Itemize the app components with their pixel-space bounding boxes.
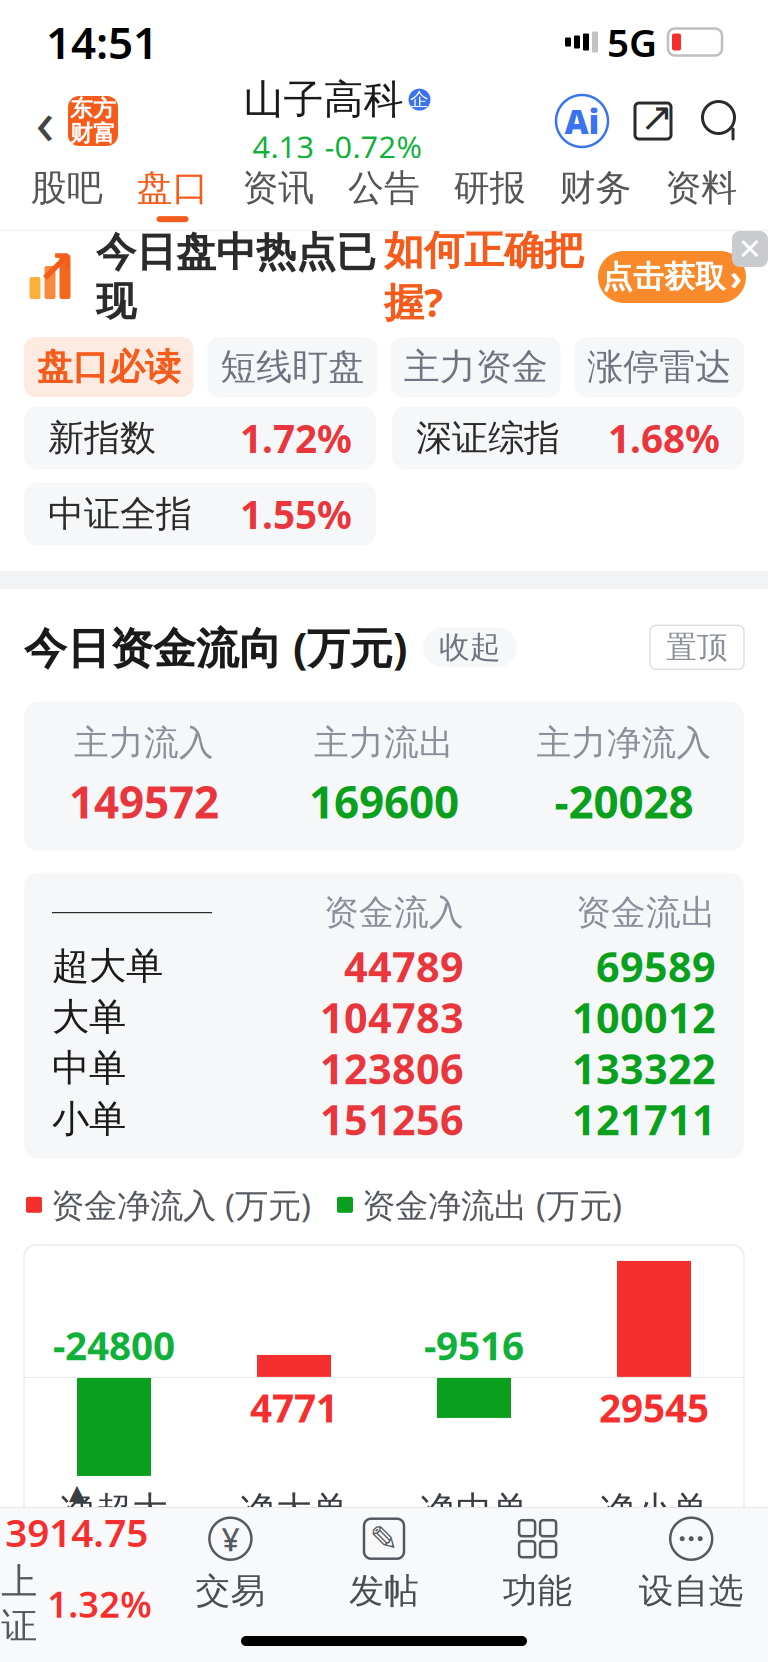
button[interactable]: 东方财富 [68, 96, 118, 146]
staticText: 44789 [344, 939, 464, 994]
staticText: 短线盯盘 [220, 345, 364, 389]
button[interactable]: 返回 [22, 93, 68, 149]
button[interactable]: 搜索 [698, 95, 746, 147]
staticText: 资金净流出 (万元) [362, 1183, 622, 1227]
staticText: 净中单 [420, 1488, 528, 1532]
button[interactable]: 研报 [437, 158, 543, 230]
staticText: 净小单 [600, 1488, 708, 1532]
staticText: -20028 [554, 772, 693, 831]
staticText: 149572 [69, 772, 219, 831]
staticText: 中单 [52, 1045, 126, 1091]
button[interactable]: 收起 [423, 627, 517, 667]
staticText: 104783 [320, 990, 464, 1045]
staticText: 29545 [599, 1382, 709, 1433]
staticText: 上证 [1, 1560, 37, 1648]
staticText: ‹ [35, 80, 54, 162]
staticText: 中证全指 [48, 492, 192, 536]
staticText: 1.68% [608, 412, 720, 464]
button[interactable]: 盘口 [120, 158, 225, 230]
button[interactable]: 功能 [461, 1514, 614, 1614]
staticText: 4771 [250, 1329, 338, 1381]
staticText: 主力净流入 [536, 722, 711, 764]
staticText: 大单 [52, 994, 126, 1040]
staticText: ✎ [369, 1519, 398, 1558]
staticText: 新指数 [48, 416, 156, 460]
staticText: 资金净流入 (万元) [51, 1183, 311, 1227]
staticText: Ai [564, 99, 599, 143]
staticText: 发帖 [349, 1570, 419, 1612]
staticText: 盘口必读 [37, 345, 181, 389]
staticText: ¥ [221, 1517, 239, 1560]
staticText: 净大单 [240, 1488, 348, 1532]
staticText: 151256 [320, 1092, 464, 1147]
staticText: 资金流出 [576, 891, 716, 934]
staticText: 盘口 [137, 166, 209, 210]
staticText: 169600 [309, 772, 459, 831]
button[interactable]: ✎ [307, 1514, 461, 1614]
staticText: 29545 [599, 1235, 709, 1287]
staticText: 研报 [454, 166, 526, 210]
staticText: 1.55% [240, 488, 352, 540]
button[interactable]: 设自选 [614, 1514, 768, 1614]
button[interactable]: 短线盯盘 [207, 337, 377, 397]
button[interactable]: ¥ [154, 1514, 307, 1614]
staticText: 净超大 [60, 1488, 168, 1532]
staticText: 1.72% [240, 412, 352, 464]
staticText: 3914.75 [5, 1506, 148, 1557]
staticText: 123806 [320, 1041, 464, 1096]
staticText: ✕ [737, 232, 762, 266]
staticText: 121711 [572, 1092, 716, 1147]
button[interactable]: ↗ [0, 231, 768, 323]
staticText: 资金流入 [324, 891, 464, 934]
staticText: 主力流出 [314, 722, 454, 764]
button[interactable]: ▲ [0, 1514, 154, 1614]
staticText: 深证综指 [416, 416, 560, 460]
staticText: 69589 [596, 939, 716, 994]
staticText: 点击获取 [602, 258, 726, 296]
staticText: 133322 [572, 1041, 716, 1096]
staticText: 公告 [348, 166, 420, 210]
staticText: 今日盘中热点已现 [96, 228, 376, 326]
staticText: 功能 [503, 1570, 573, 1612]
staticText: 主力资金 [404, 345, 548, 389]
button[interactable]: 公告 [331, 158, 437, 230]
staticText: -9516 [424, 1320, 524, 1371]
staticText: -24800 [53, 1320, 175, 1371]
staticText: -0.72% [324, 126, 421, 167]
staticText: 收起 [439, 628, 501, 666]
staticText: ↗ [640, 94, 674, 140]
staticText: 4.13 [252, 126, 314, 167]
staticText: 100012 [572, 990, 716, 1045]
staticText: 如何正确把握? [384, 226, 584, 328]
staticText: 14:51 [46, 13, 158, 71]
button[interactable]: 资讯 [225, 158, 331, 230]
staticText: 资讯 [242, 166, 314, 210]
button[interactable]: AI 助手 [556, 95, 608, 147]
staticText: 山子高科 [243, 75, 403, 124]
button[interactable]: 涨停雷达 [574, 337, 744, 397]
staticText: ↗ [37, 241, 75, 293]
button[interactable]: 资料 [648, 158, 754, 230]
button[interactable]: 盘口必读 [24, 337, 193, 397]
staticText: ▲ [69, 1480, 85, 1504]
staticText: 5G [607, 16, 657, 68]
staticText: 置顶 [666, 628, 728, 666]
staticText: 今日资金流向 (万元) [24, 619, 407, 676]
staticText: 交易 [195, 1570, 265, 1612]
staticText: › [730, 255, 742, 299]
staticText: 东方 [70, 95, 116, 122]
button[interactable]: 股吧 [14, 158, 120, 230]
staticText: 财务 [559, 166, 631, 210]
staticText: 1.32% [47, 1580, 152, 1628]
staticText: 资料 [665, 166, 737, 210]
staticText: 设自选 [639, 1570, 744, 1612]
button[interactable]: 置顶 [650, 625, 744, 669]
staticText: 超大单 [52, 943, 163, 989]
staticText: 4771 [250, 1382, 338, 1433]
staticText: 小单 [52, 1096, 126, 1142]
button[interactable]: 财务 [543, 158, 648, 230]
staticText: 企 [410, 88, 429, 111]
button[interactable]: 分享 [630, 95, 676, 147]
button[interactable]: 主力资金 [391, 337, 560, 397]
button[interactable]: 关闭 [732, 231, 768, 267]
